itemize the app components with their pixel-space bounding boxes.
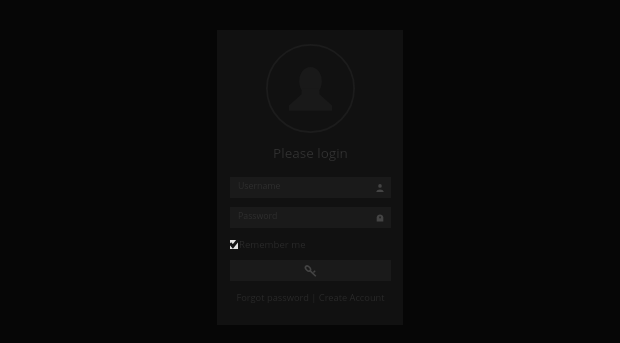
staticText: Please login [273, 144, 348, 162]
staticText: Password [238, 210, 278, 222]
staticText: Remember me [239, 238, 306, 250]
staticText: Username [238, 180, 281, 192]
staticText: Forgot password | Create Account [236, 291, 385, 304]
button[interactable]: Password [230, 207, 391, 228]
button[interactable]: Log in [230, 260, 391, 281]
button[interactable]: Remember me [230, 238, 391, 250]
button[interactable]: Username [230, 177, 391, 198]
